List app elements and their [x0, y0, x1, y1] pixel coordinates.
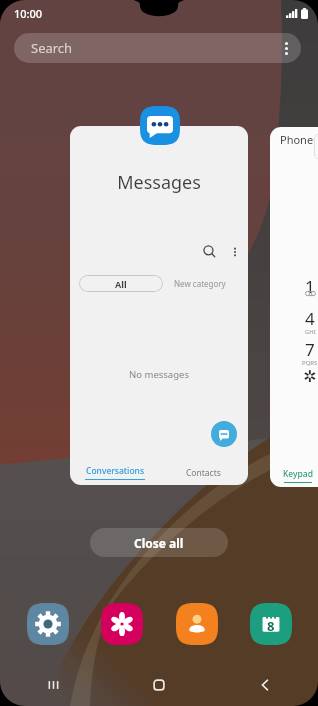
staticText: Contacts — [186, 467, 221, 479]
button[interactable]: Messages — [70, 126, 248, 485]
staticText: 10:00 — [14, 6, 43, 21]
staticText: PQRS — [302, 359, 318, 367]
other: More options — [285, 42, 288, 55]
staticText: 4 — [305, 307, 315, 330]
button[interactable]: Home — [106, 678, 212, 692]
button[interactable]: Gallery — [101, 603, 143, 645]
staticText: All — [115, 278, 127, 290]
button[interactable]: Recents — [0, 678, 106, 692]
staticText: ✲ — [303, 367, 317, 386]
staticText: Conversations — [86, 465, 145, 477]
button[interactable]: Contacts — [176, 603, 218, 645]
staticText: 8 — [267, 617, 275, 635]
button[interactable]: Search — [14, 33, 301, 63]
button[interactable]: 7 — [297, 338, 318, 369]
button[interactable]: Settings — [27, 603, 69, 645]
button[interactable]: Messages app — [140, 106, 180, 145]
button[interactable]: Contacts — [159, 467, 248, 479]
staticText: Close all — [134, 535, 184, 551]
button[interactable]: Close all — [90, 528, 228, 557]
button[interactable]: More options — [229, 246, 241, 258]
staticText: GHI — [305, 328, 316, 336]
staticText: 7 — [305, 338, 315, 361]
button[interactable]: Back — [212, 678, 318, 692]
button[interactable]: All — [79, 275, 163, 292]
button[interactable]: Calendar — [250, 603, 292, 645]
staticText: New category — [174, 278, 226, 289]
staticText: No messages — [70, 368, 248, 381]
button[interactable] — [314, 133, 318, 160]
staticText: Search — [31, 39, 73, 57]
staticText: Keypad — [283, 468, 313, 480]
staticText: Phone — [280, 132, 314, 147]
staticText: Messages — [70, 170, 248, 195]
button[interactable]: Phone — [270, 127, 318, 487]
button[interactable]: New conversation — [211, 421, 237, 447]
button[interactable]: Search — [202, 244, 217, 259]
button[interactable]: Conversations — [70, 465, 159, 480]
button[interactable]: 4 — [297, 307, 318, 338]
staticText: 1 — [305, 275, 315, 298]
button[interactable]: 1 — [297, 275, 318, 307]
